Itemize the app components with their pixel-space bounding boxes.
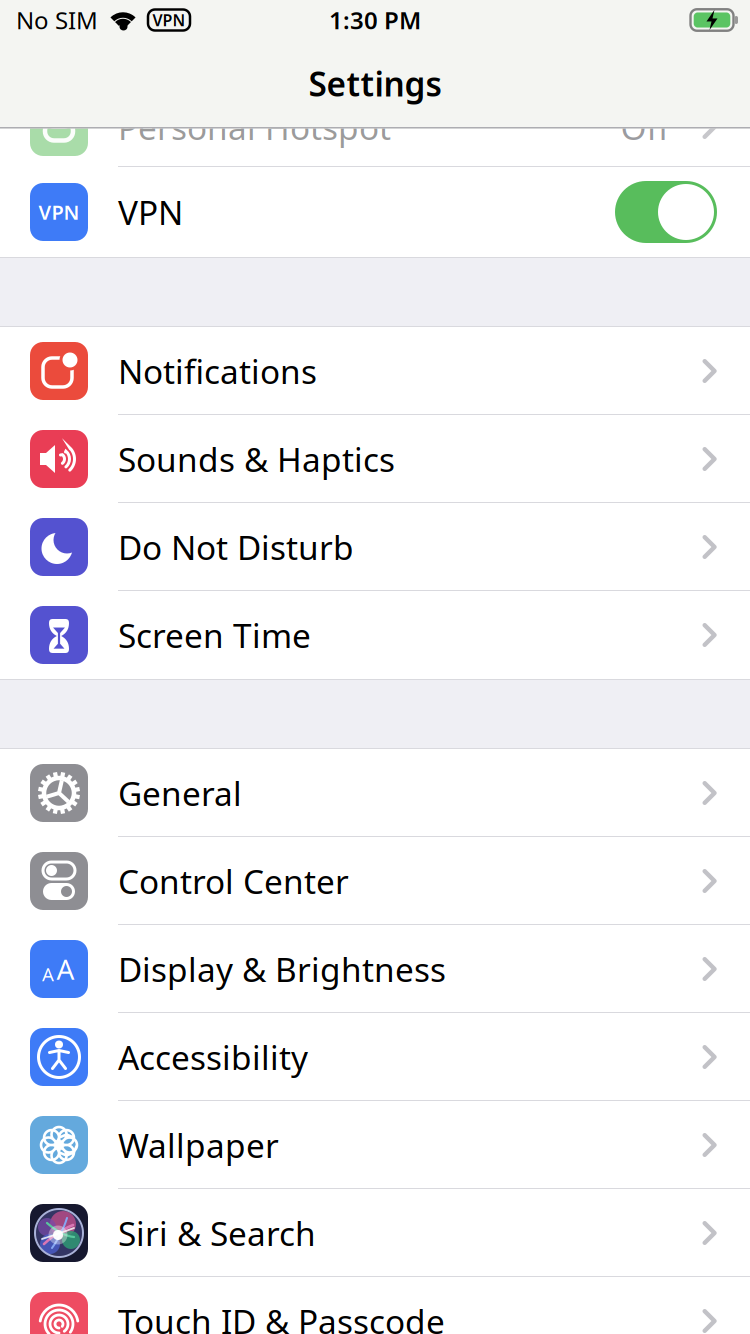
staticText: VPN: [152, 9, 185, 31]
button[interactable]: Accessibility: [0, 1013, 750, 1101]
staticText: Sounds & Haptics: [118, 437, 395, 481]
button[interactable]: General: [0, 749, 750, 837]
staticText: Do Not Disturb: [118, 525, 354, 569]
staticText: Touch ID & Passcode: [118, 1299, 445, 1334]
staticText: A: [42, 962, 54, 986]
button[interactable]: A: [0, 925, 750, 1013]
staticText: Display & Brightness: [118, 947, 446, 991]
staticText: Wallpaper: [118, 1123, 279, 1167]
button[interactable]: Wallpaper: [0, 1101, 750, 1189]
button[interactable]: Sounds & Haptics: [0, 415, 750, 503]
staticText: General: [118, 771, 242, 815]
staticText: Control Center: [118, 859, 349, 903]
button[interactable]: Siri & Search: [0, 1189, 750, 1277]
button[interactable]: Notifications: [0, 327, 750, 415]
staticText: Accessibility: [118, 1035, 308, 1079]
staticText: No SIM: [16, 4, 98, 36]
staticText: VPN: [118, 190, 183, 234]
staticText: Personal Hotspot: [118, 105, 391, 149]
staticText: Off: [620, 105, 669, 149]
staticText: Notifications: [118, 349, 317, 393]
button[interactable]: Personal Hotspot: [0, 79, 750, 167]
button[interactable]: Screen Time: [0, 591, 750, 679]
staticText: VPN: [38, 199, 79, 225]
staticText: Siri & Search: [118, 1211, 316, 1255]
button[interactable]: VPN On: [615, 181, 717, 243]
button[interactable]: Touch ID & Passcode: [0, 1277, 750, 1334]
staticText: A: [56, 950, 74, 988]
button[interactable]: Control Center: [0, 837, 750, 925]
staticText: Screen Time: [118, 613, 311, 657]
button[interactable]: Do Not Disturb: [0, 503, 750, 591]
staticText: 1:30 PM: [329, 4, 421, 36]
button[interactable]: VPN: [0, 167, 750, 257]
staticText: Settings: [308, 61, 441, 106]
